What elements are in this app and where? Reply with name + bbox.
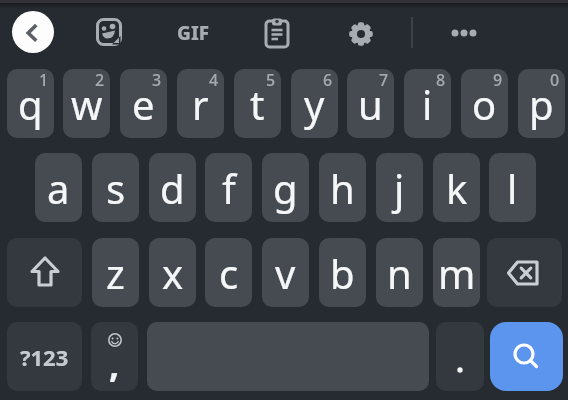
- staticText: 9: [493, 69, 503, 91]
- staticText: c: [219, 246, 239, 300]
- button[interactable]: [7, 238, 82, 307]
- staticText: g: [273, 161, 298, 215]
- button[interactable]: [487, 238, 562, 307]
- staticText: 8: [436, 69, 446, 91]
- button[interactable]: d: [149, 153, 196, 222]
- button[interactable]: [490, 322, 563, 391]
- button[interactable]: t: [234, 69, 281, 138]
- button[interactable]: e: [120, 69, 167, 138]
- staticText: u: [358, 77, 383, 131]
- staticText: o: [472, 77, 497, 131]
- button[interactable]: u: [347, 69, 394, 138]
- staticText: i: [422, 77, 433, 131]
- button[interactable]: [12, 11, 54, 53]
- button[interactable]: b: [319, 238, 366, 307]
- staticText: 6: [323, 69, 333, 91]
- staticText: p: [529, 77, 554, 131]
- button[interactable]: z: [92, 238, 139, 307]
- staticText: d: [160, 161, 185, 215]
- button[interactable]: [344, 17, 378, 51]
- staticText: GIF: [177, 20, 210, 46]
- button[interactable]: [448, 23, 480, 43]
- button[interactable]: [260, 16, 294, 50]
- staticText: ,: [109, 339, 120, 388]
- staticText: f: [222, 161, 236, 215]
- staticText: 2: [95, 69, 105, 91]
- button[interactable]: ,: [91, 322, 138, 391]
- button[interactable]: w: [63, 69, 110, 138]
- staticText: 1: [39, 69, 49, 91]
- button[interactable]: [436, 322, 484, 391]
- button[interactable]: o: [461, 69, 508, 138]
- staticText: y: [304, 77, 325, 131]
- button[interactable]: k: [433, 153, 480, 222]
- button[interactable]: y: [291, 69, 338, 138]
- staticText: r: [192, 77, 209, 131]
- staticText: s: [106, 161, 126, 215]
- button[interactable]: a: [35, 153, 82, 222]
- staticText: m: [438, 246, 476, 300]
- staticText: w: [71, 77, 103, 131]
- staticText: t: [250, 77, 265, 131]
- button[interactable]: f: [205, 153, 252, 222]
- button[interactable]: x: [149, 238, 196, 307]
- button[interactable]: v: [262, 238, 309, 307]
- button[interactable]: h: [319, 153, 366, 222]
- staticText: n: [387, 246, 412, 300]
- staticText: q: [18, 77, 43, 131]
- staticText: k: [446, 161, 468, 215]
- button[interactable]: n: [376, 238, 423, 307]
- staticText: 7: [379, 69, 389, 91]
- button[interactable]: r: [177, 69, 224, 138]
- button[interactable]: p: [518, 69, 565, 138]
- button[interactable]: m: [433, 238, 480, 307]
- staticText: a: [47, 161, 70, 215]
- staticText: j: [394, 161, 405, 215]
- button[interactable]: [92, 15, 126, 49]
- staticText: 3: [152, 69, 162, 91]
- button[interactable]: j: [376, 153, 423, 222]
- staticText: v: [275, 246, 296, 300]
- staticText: z: [106, 246, 125, 300]
- staticText: ?123: [20, 342, 69, 372]
- button[interactable]: ?123: [7, 322, 82, 391]
- button[interactable]: c: [205, 238, 252, 307]
- button[interactable]: GIF: [167, 16, 219, 49]
- staticText: 5: [266, 69, 276, 91]
- button[interactable]: q: [7, 69, 54, 138]
- staticText: b: [330, 246, 355, 300]
- staticText: 4: [209, 69, 219, 91]
- button[interactable]: l: [489, 153, 536, 222]
- button[interactable]: i: [404, 69, 451, 138]
- button[interactable]: g: [262, 153, 309, 222]
- staticText: 0: [550, 69, 560, 91]
- staticText: h: [330, 161, 355, 215]
- staticText: e: [132, 77, 155, 131]
- staticText: l: [507, 161, 518, 215]
- button[interactable]: s: [92, 153, 139, 222]
- staticText: x: [162, 246, 184, 300]
